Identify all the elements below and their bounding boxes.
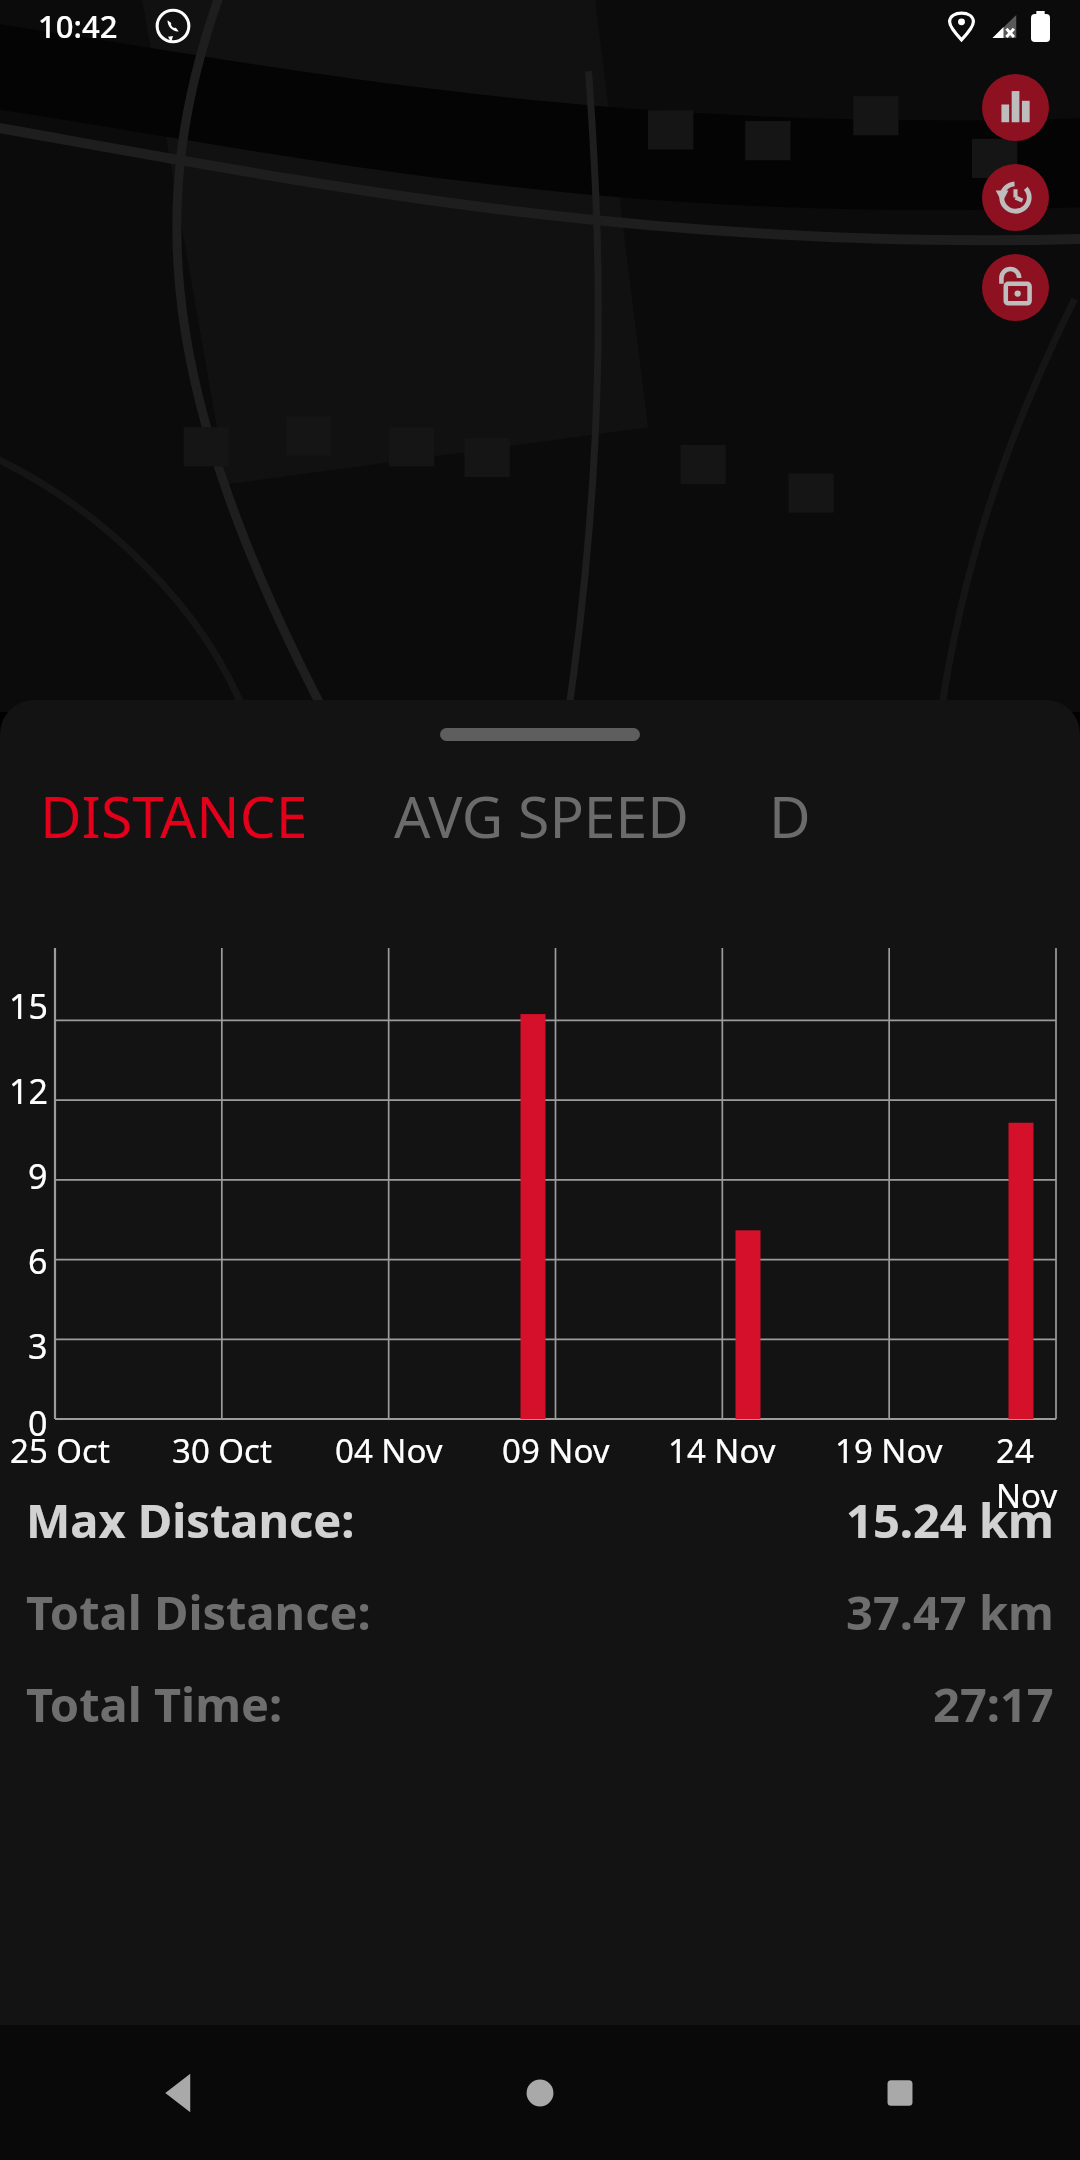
staticText: 15.24 km bbox=[846, 1488, 1054, 1552]
staticText: 25 Oct bbox=[10, 1428, 110, 1473]
staticText: 30 Oct bbox=[172, 1428, 272, 1473]
staticText: 10:42 bbox=[38, 5, 118, 47]
button[interactable]: Back bbox=[0, 2025, 360, 2160]
staticText: 6 bbox=[28, 1238, 48, 1284]
staticText: 19 Nov bbox=[835, 1428, 943, 1473]
button[interactable]: AVG SPEED bbox=[394, 777, 689, 855]
staticText: AVG SPEED bbox=[394, 777, 689, 855]
staticText: 15 bbox=[9, 983, 48, 1029]
button[interactable]: Home bbox=[360, 2025, 720, 2160]
button[interactable]: Statistics bbox=[982, 74, 1049, 141]
staticText: Total Time: bbox=[26, 1672, 283, 1736]
button[interactable]: Recents bbox=[720, 2025, 1080, 2160]
staticText: 3 bbox=[28, 1323, 48, 1369]
staticText: Total Distance: bbox=[26, 1580, 371, 1644]
staticText: 12 bbox=[9, 1068, 48, 1114]
staticText: D bbox=[769, 777, 811, 855]
button[interactable]: Max Distance: bbox=[26, 1488, 1054, 1552]
staticText: 14 Nov bbox=[668, 1428, 776, 1473]
staticText: 04 Nov bbox=[335, 1428, 443, 1473]
staticText: 0 bbox=[28, 1400, 48, 1446]
staticText: 9 bbox=[28, 1153, 48, 1199]
button[interactable]: Total Time: bbox=[26, 1672, 1054, 1736]
staticText: DISTANCE bbox=[40, 777, 308, 855]
button[interactable]: D bbox=[769, 777, 811, 855]
button[interactable]: Total Distance: bbox=[26, 1580, 1054, 1644]
staticText: 37.47 km bbox=[846, 1580, 1054, 1644]
staticText: 09 Nov bbox=[502, 1428, 610, 1473]
button[interactable]: Unlock bbox=[982, 254, 1049, 321]
staticText: 24 Nov bbox=[996, 1428, 1080, 1518]
staticText: Max Distance: bbox=[26, 1488, 355, 1552]
button[interactable]: History bbox=[982, 164, 1049, 231]
button[interactable]: DISTANCE bbox=[40, 777, 308, 855]
staticText: 27:17 bbox=[933, 1672, 1054, 1736]
